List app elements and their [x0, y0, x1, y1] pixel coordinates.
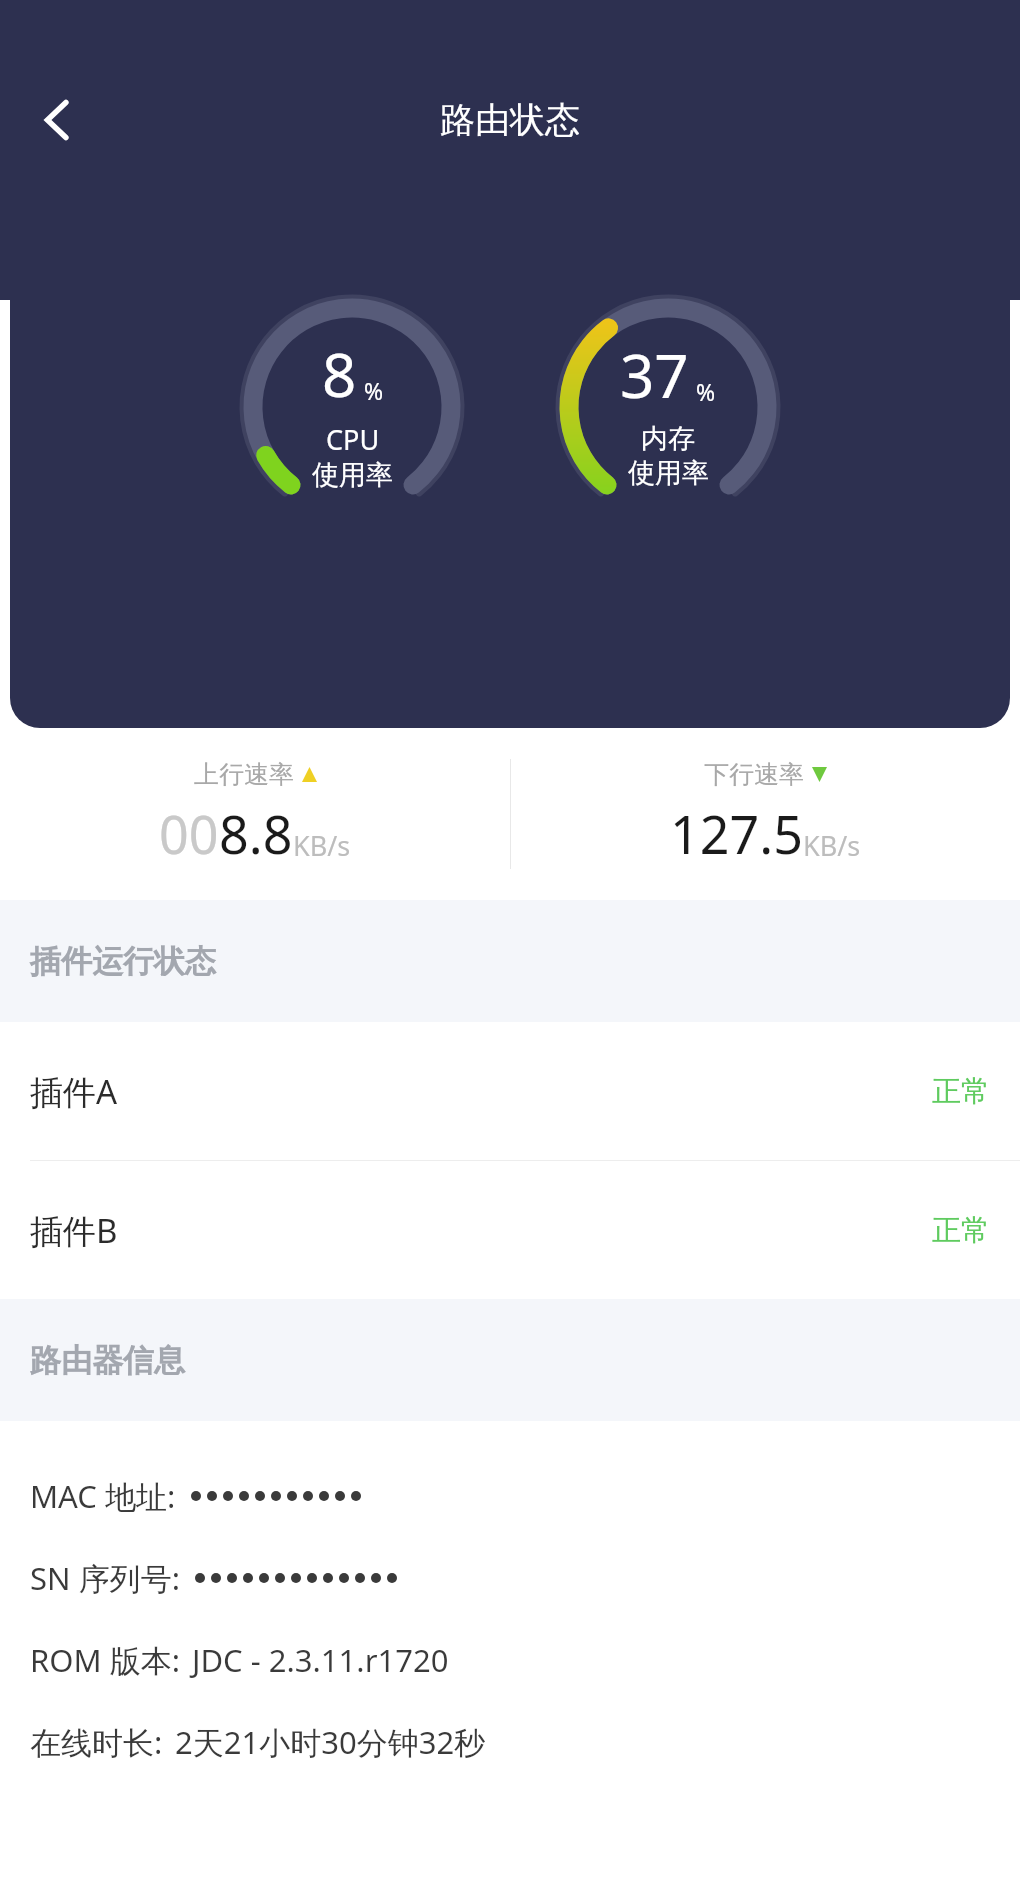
staticText: 插件运行状态 — [30, 942, 216, 981]
staticText: 上行速率 — [194, 759, 294, 790]
staticText: 8.8 — [219, 798, 293, 869]
staticText: CPU — [326, 421, 380, 458]
staticText: 在线时长: — [30, 1721, 163, 1763]
staticText: MAC 地址: — [30, 1475, 176, 1517]
staticText: % — [696, 376, 716, 407]
staticText: 使用率 — [312, 458, 393, 492]
staticText: 37 — [620, 334, 689, 416]
staticText: 路由状态 — [440, 98, 580, 142]
staticText: 127.5 — [670, 798, 803, 869]
button[interactable]: Back — [20, 82, 96, 158]
staticText: KB/s — [293, 827, 351, 864]
button[interactable]: 插件A — [0, 1022, 1020, 1160]
staticText: 正常 — [932, 1212, 990, 1249]
staticText: JDC - 2.3.11.r1720 — [192, 1639, 449, 1681]
staticText: 8 — [322, 333, 357, 415]
staticText: 使用率 — [628, 456, 709, 490]
staticText: 正常 — [932, 1073, 990, 1110]
staticText: SN 序列号: — [30, 1557, 180, 1599]
staticText: 下行速率 — [704, 759, 804, 790]
staticText: 2天21小时30分钟32秒 — [175, 1721, 486, 1763]
staticText: 内存 — [641, 422, 695, 456]
staticText: ROM 版本: — [30, 1639, 180, 1681]
staticText: KB/s — [803, 827, 861, 864]
staticText: 插件A — [30, 1069, 118, 1114]
button[interactable]: 插件B — [0, 1161, 1020, 1299]
staticText: 插件B — [30, 1208, 118, 1253]
staticText: 路由器信息 — [30, 1341, 185, 1380]
staticText: % — [364, 375, 384, 406]
staticText: 00 — [159, 798, 219, 869]
